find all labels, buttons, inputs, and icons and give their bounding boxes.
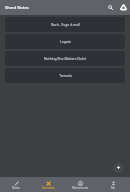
button[interactable]: Metronome: [117, 1, 130, 14]
button[interactable]: Me: [97, 177, 130, 192]
staticText: Notes: [12, 186, 21, 190]
button[interactable]: Bach - Fuga d-moll: [5, 17, 125, 32]
staticText: Nothing Else Matters (Solo): [44, 56, 86, 60]
button[interactable]: Notes: [0, 177, 32, 192]
staticText: Metronome: [72, 186, 89, 190]
button[interactable]: Legato: [5, 34, 125, 49]
staticText: Me: [111, 186, 116, 190]
button[interactable]: Metronome: [64, 177, 97, 192]
staticText: Shred Notes: [5, 5, 104, 10]
staticText: Exercises: [42, 186, 55, 190]
staticText: Legato: [60, 39, 71, 43]
button[interactable]: Add note: [113, 162, 124, 173]
staticText: Tremolo: [59, 73, 72, 77]
button[interactable]: Tremolo: [5, 68, 125, 83]
button[interactable]: Exercises: [32, 177, 64, 192]
button[interactable]: Search: [104, 1, 117, 14]
staticText: Bach - Fuga d-moll: [51, 22, 80, 26]
button[interactable]: Nothing Else Matters (Solo): [5, 51, 125, 66]
